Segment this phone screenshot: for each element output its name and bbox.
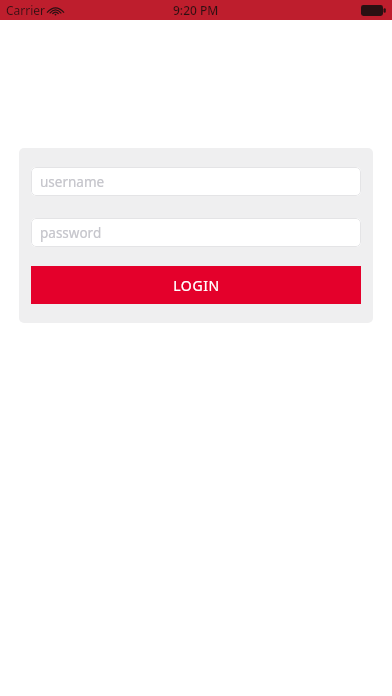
button[interactable]: username — [31, 167, 361, 196]
staticText: Carrier — [6, 2, 46, 18]
button[interactable]: LOGIN — [31, 266, 361, 304]
staticText: 9:20 PM — [173, 2, 219, 18]
staticText: username — [40, 173, 105, 191]
staticText: LOGIN — [173, 276, 220, 295]
staticText: password — [40, 224, 102, 242]
button[interactable]: password — [31, 218, 361, 247]
